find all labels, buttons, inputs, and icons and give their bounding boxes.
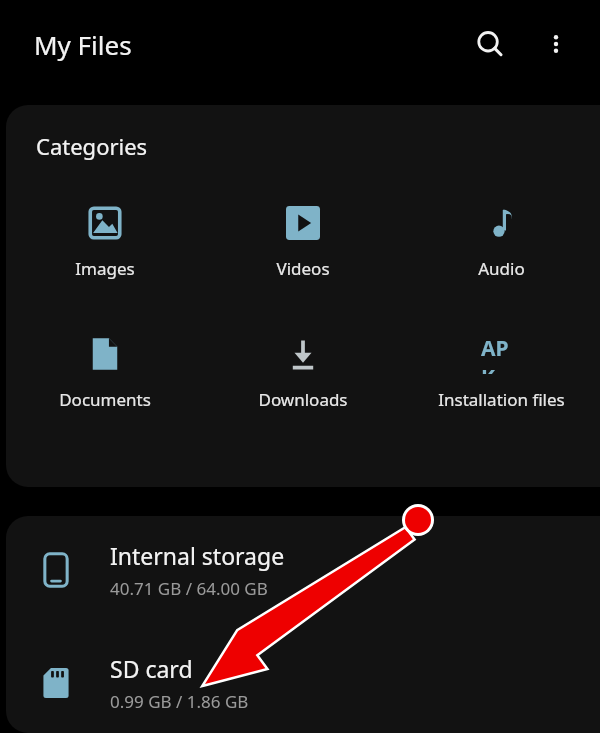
staticText: SD card <box>110 653 193 684</box>
button[interactable]: Search <box>466 20 514 68</box>
staticText: Categories <box>36 131 148 161</box>
staticText: APK <box>481 334 521 374</box>
staticText: 0.99 GB / 1.86 GB <box>110 690 249 713</box>
staticText: 40.71 GB / 64.00 GB <box>110 577 268 600</box>
staticText: Downloads <box>258 388 348 411</box>
button[interactable]: APK <box>402 332 600 413</box>
button[interactable]: Videos <box>204 201 402 282</box>
button[interactable]: Audio <box>402 201 600 282</box>
staticText: Videos <box>276 257 330 280</box>
staticText: My Files <box>34 27 132 62</box>
button[interactable]: More options <box>532 20 580 68</box>
staticText: Audio <box>478 257 525 280</box>
button[interactable]: Images <box>6 201 204 282</box>
button[interactable]: Downloads <box>204 332 402 413</box>
staticText: Documents <box>59 388 151 411</box>
staticText: Internal storage <box>110 540 285 571</box>
button[interactable]: SD card <box>6 632 600 733</box>
staticText: Installation files <box>438 388 565 411</box>
staticText: Images <box>75 257 135 280</box>
button[interactable]: Internal storage <box>6 516 600 624</box>
button[interactable]: Documents <box>6 332 204 413</box>
